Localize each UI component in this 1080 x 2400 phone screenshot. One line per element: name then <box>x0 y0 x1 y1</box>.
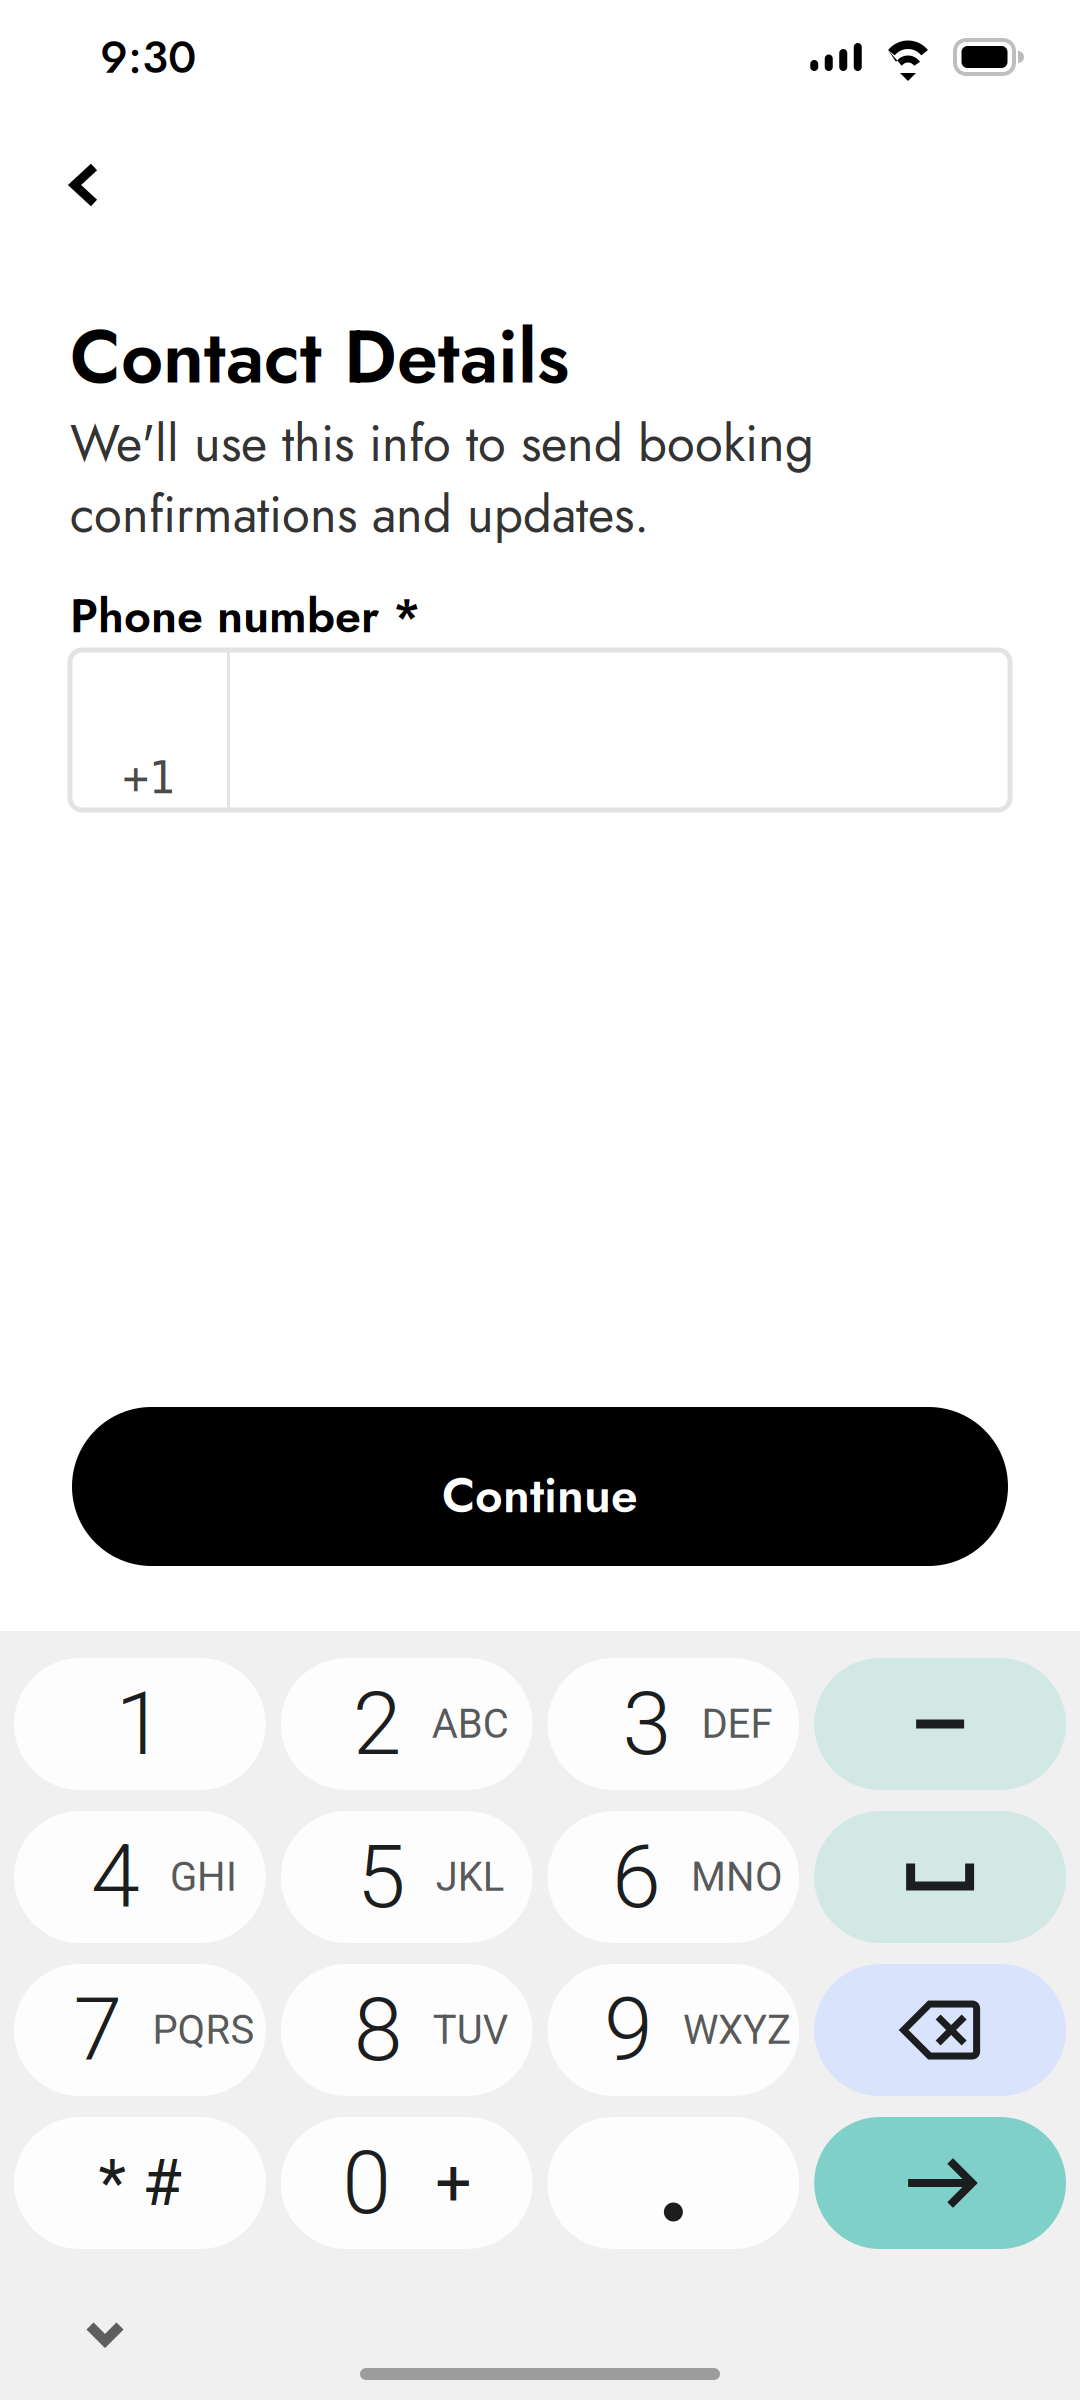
button[interactable]: 6 <box>547 1811 799 1943</box>
staticText: ABC <box>432 1701 509 1747</box>
button[interactable]: 4 <box>14 1811 266 1943</box>
staticText: JKL <box>436 1854 505 1900</box>
staticText: 4 <box>91 1825 140 1928</box>
staticText: TUV <box>433 2007 508 2053</box>
staticText: Continue <box>442 1461 638 1530</box>
staticText: 0 <box>342 2131 391 2234</box>
button[interactable]: Hide keyboard <box>60 2299 150 2368</box>
staticText: 5 <box>357 1825 406 1928</box>
staticText: MNO <box>691 1854 783 1900</box>
button[interactable]: Continue <box>72 1407 1008 1566</box>
button[interactable]: Back <box>46 117 122 214</box>
button[interactable]: 1 <box>14 1658 266 1790</box>
button[interactable]: * # <box>14 2117 266 2249</box>
staticText: We'll use this info to send booking <box>70 407 814 480</box>
staticText: + <box>435 2145 471 2220</box>
button[interactable]: Delete <box>814 1964 1066 2096</box>
staticText: WXYZ <box>683 2007 791 2053</box>
staticText: 9 <box>604 1978 653 2081</box>
button[interactable]: 2 <box>281 1658 533 1790</box>
button[interactable]: Next <box>814 2117 1066 2249</box>
button[interactable]: 3 <box>547 1658 799 1790</box>
staticText: +1 <box>122 752 174 804</box>
staticText: 9:30 <box>100 24 196 90</box>
staticText: Contact Details <box>70 304 569 410</box>
button[interactable]: Period <box>547 2117 799 2249</box>
staticText: 2 <box>353 1672 402 1775</box>
staticText: 3 <box>622 1672 671 1775</box>
staticText: PQRS <box>152 2007 254 2053</box>
button[interactable]: 8 <box>281 1964 533 2096</box>
staticText: confirmations and updates. <box>70 478 649 551</box>
button[interactable]: Space <box>814 1811 1066 1943</box>
staticText: 7 <box>73 1978 122 2081</box>
staticText: 1 <box>115 1672 164 1775</box>
button[interactable]: 0 <box>281 2117 533 2249</box>
staticText: * # <box>98 2145 181 2220</box>
staticText: Phone number * <box>70 582 421 650</box>
button[interactable]: 5 <box>281 1811 533 1943</box>
button[interactable]: Hyphen <box>814 1658 1066 1790</box>
staticText: 6 <box>612 1825 661 1928</box>
staticText: GHI <box>170 1854 237 1900</box>
button[interactable]: 9 <box>547 1964 799 2096</box>
staticText: 8 <box>354 1978 403 2081</box>
button[interactable]: 7 <box>14 1964 266 2096</box>
staticText: DEF <box>701 1701 772 1747</box>
